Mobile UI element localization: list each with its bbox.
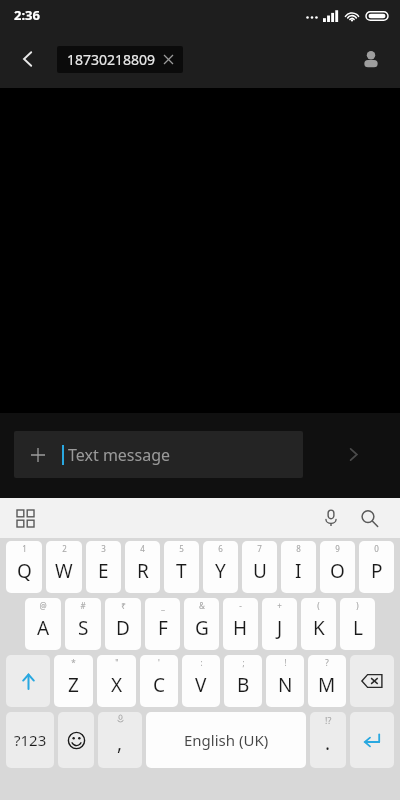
staticText: _ [161,600,165,611]
staticText: 4 [140,543,145,554]
button[interactable]: English (UK) [146,712,306,768]
button[interactable]: 6 [203,541,238,593]
button[interactable]: 7 [242,541,277,593]
button[interactable]: " [97,655,136,707]
staticText: ₹ [121,600,126,611]
button[interactable]: @ [25,598,61,650]
button[interactable]: Text message [14,431,303,478]
button[interactable]: Enter [350,712,394,768]
staticText: A [37,615,50,641]
staticText: J [277,615,283,641]
staticText: ! [284,657,287,668]
button[interactable]: # [65,598,101,650]
button[interactable]: Shift [6,655,50,707]
button[interactable]: 4 [125,541,160,593]
button[interactable]: Send [330,431,377,478]
staticText: 5 [179,543,184,554]
staticText: N [278,672,293,698]
staticText: X [111,672,123,698]
button[interactable]: + [262,598,297,650]
staticText: ? [325,657,329,668]
staticText: C [153,672,166,698]
staticText: , [117,730,123,756]
button[interactable]: 3 [86,541,121,593]
button[interactable]: Search [350,499,388,537]
staticText: Text message [68,444,171,466]
staticText: O [330,558,345,584]
staticText: H [233,615,248,641]
staticText: ; [242,657,245,668]
button[interactable]: 8 [281,541,316,593]
staticText: S [78,615,89,641]
button[interactable]: 1 [6,541,42,593]
staticText: R [137,558,149,584]
staticText: F [158,615,168,641]
button[interactable]: Backspace [350,655,394,707]
button[interactable]: _ [145,598,180,650]
staticText: English (UK) [184,730,269,750]
staticText: P [371,558,383,584]
button[interactable]: * [54,655,93,707]
staticText: G [195,615,209,641]
staticText: E [98,558,109,584]
staticText: L [353,615,363,641]
staticText: * [71,657,76,668]
button[interactable]: 9 [320,541,355,593]
staticText: . [325,730,331,756]
button[interactable]: Emoji [58,712,94,768]
staticText: ?123 [14,730,47,750]
button[interactable]: ' [140,655,178,707]
staticText: V [195,672,207,698]
button[interactable]: Voice input [312,499,350,537]
staticText: 3 [101,543,106,554]
button[interactable]: Contact [348,36,394,82]
staticText: D [116,615,130,641]
staticText: 18730218809 [67,50,156,69]
staticText: B [237,672,250,698]
staticText: @ [39,600,47,611]
staticText: 7 [257,543,262,554]
staticText: 2 [62,543,67,554]
staticText: Y [215,558,226,584]
button[interactable]: 2 [46,541,82,593]
staticText: 1 [22,543,27,554]
staticText: T [176,558,187,584]
staticText: - [239,600,242,611]
button[interactable]: 5 [164,541,199,593]
staticText: W [55,558,73,584]
staticText: : [200,657,203,668]
button[interactable]: : [182,655,220,707]
staticText: + [277,600,282,611]
staticText: 0 [374,543,379,554]
staticText: ' [158,657,160,668]
staticText: U [253,558,267,584]
button[interactable]: - [223,598,258,650]
staticText: I [295,558,302,584]
button[interactable]: ; [224,655,262,707]
button[interactable]: Back [4,35,52,83]
staticText: ) [356,600,359,611]
staticText: K [313,615,325,641]
staticText: 9 [335,543,340,554]
button[interactable]: !? [310,712,346,768]
button[interactable]: ?123 [6,712,54,768]
button[interactable]: ₹ [105,598,141,650]
button[interactable]: ( [301,598,336,650]
button[interactable]: 0 [359,541,394,593]
staticText: !? [325,714,332,726]
staticText: " [115,657,119,668]
staticText: 8 [296,543,301,554]
button[interactable]: ? [308,655,346,707]
staticText: Z [68,672,79,698]
staticText: 6 [218,543,223,554]
staticText: M [318,672,336,698]
staticText: 2:36 [14,6,40,24]
button[interactable]: 18730218809 [57,46,183,73]
button[interactable]: ) [340,598,375,650]
button[interactable]: , [98,712,142,768]
button[interactable]: ! [266,655,304,707]
staticText: & [199,600,205,611]
button[interactable]: & [184,598,219,650]
staticText: # [80,600,86,611]
button[interactable]: Menu [6,499,44,537]
